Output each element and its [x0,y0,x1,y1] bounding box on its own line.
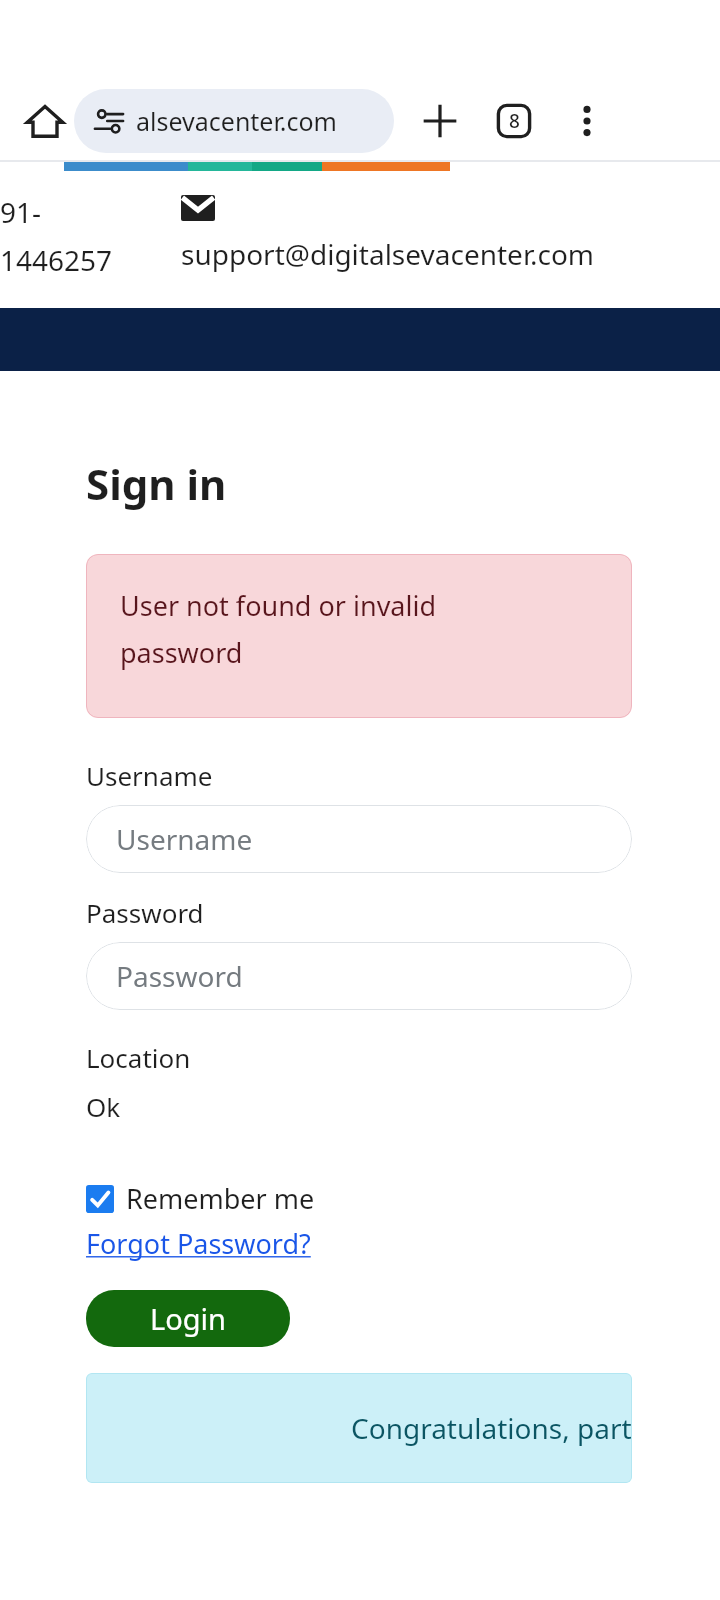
staticText: Ok [86,1089,121,1124]
staticText: Forgot Password? [86,1225,311,1262]
button[interactable]: Password [86,942,632,1010]
staticText: 8 [509,108,520,134]
staticText: Congratulations, part [351,1409,632,1447]
staticText: Username [86,758,213,793]
staticText: Username [116,820,253,858]
staticText: Password [116,957,243,995]
button[interactable]: Username [86,805,632,873]
staticText: Remember me [126,1180,315,1217]
staticText: support@digitalsevacenter.com [181,235,595,273]
staticText: Password [86,895,204,930]
staticText: Sign in [86,455,227,512]
button[interactable]: Forgot Password? [86,1225,311,1262]
button[interactable]: Switch tabs, 8 open [488,95,540,147]
staticText: alsevacenter.com [136,104,337,138]
button[interactable]: Home [20,96,70,146]
staticText: User not found or invalid password [120,587,437,671]
button[interactable]: More options [562,96,612,146]
staticText: Location [86,1040,191,1075]
button[interactable]: Login [86,1290,290,1347]
button[interactable]: Remember me [86,1180,315,1217]
button[interactable]: Congratulations, part [86,1373,632,1483]
staticText: Login [150,1299,226,1338]
button[interactable]: alsevacenter.com [74,89,394,153]
staticText: 11446257 [0,241,113,279]
staticText: +91- [0,193,42,231]
button[interactable]: New tab [414,95,466,147]
